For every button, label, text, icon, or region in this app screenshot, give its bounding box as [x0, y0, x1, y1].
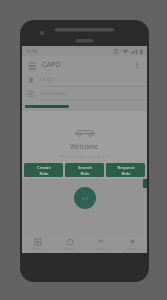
staticText: CAPO	[42, 60, 61, 70]
staticText: Create Ride	[37, 165, 51, 176]
staticText: Nearby	[126, 247, 137, 251]
button[interactable]: Profile	[85, 237, 116, 253]
staticText: Home	[33, 247, 43, 251]
button[interactable]: Origin	[22, 73, 147, 87]
button[interactable]: Create Ride	[24, 163, 63, 177]
staticText: Destination	[40, 90, 68, 97]
staticText: Origin	[40, 76, 55, 83]
button[interactable]: Search Ride	[65, 163, 104, 177]
button[interactable]: Destination	[22, 87, 147, 101]
button[interactable]: Request Ride	[106, 163, 145, 177]
staticText: Request Ride	[117, 165, 135, 176]
button[interactable]: History	[54, 237, 85, 253]
button[interactable]: Expand panel	[143, 179, 147, 188]
button[interactable]: Go	[74, 187, 96, 209]
staticText: Welcome	[70, 142, 99, 151]
button[interactable]: More options	[132, 60, 142, 70]
button[interactable]: Home	[22, 237, 54, 253]
staticText: History	[64, 247, 75, 251]
staticText: Where are you traveling to?	[59, 154, 111, 159]
button[interactable]: Open navigation menu	[27, 60, 37, 70]
staticText: Search Ride	[78, 165, 92, 176]
button[interactable]: Nearby	[116, 237, 147, 253]
staticText: Profile	[96, 247, 106, 251]
staticText: 11:43	[26, 48, 38, 54]
staticText: GO	[82, 196, 89, 201]
